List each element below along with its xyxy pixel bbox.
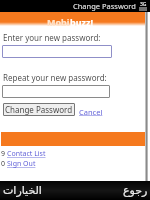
staticText: Change Password xyxy=(73,1,136,11)
button[interactable]: 0 xyxy=(1,159,150,169)
staticText: Sign Out xyxy=(7,159,36,169)
staticText: 0 xyxy=(1,159,7,169)
staticText: 9 xyxy=(1,149,7,159)
button[interactable] xyxy=(2,45,112,58)
staticText: 3G xyxy=(140,1,147,8)
button[interactable]: 9 xyxy=(1,149,150,159)
button[interactable]: Change Password xyxy=(3,103,75,116)
button[interactable]: Cancel xyxy=(79,107,103,117)
button[interactable]: رجوع xyxy=(123,184,148,197)
staticText: Repeat your new password: xyxy=(3,72,107,83)
staticText: Mobi xyxy=(47,16,70,28)
button[interactable]: الخيارات xyxy=(3,184,42,197)
other: Network 3G xyxy=(139,1,148,12)
button[interactable] xyxy=(2,85,110,98)
staticText: Contact List xyxy=(7,149,46,159)
staticText: Change Password xyxy=(5,104,73,115)
staticText: Enter your new password: xyxy=(3,32,101,43)
staticText: buzz! xyxy=(70,16,93,28)
